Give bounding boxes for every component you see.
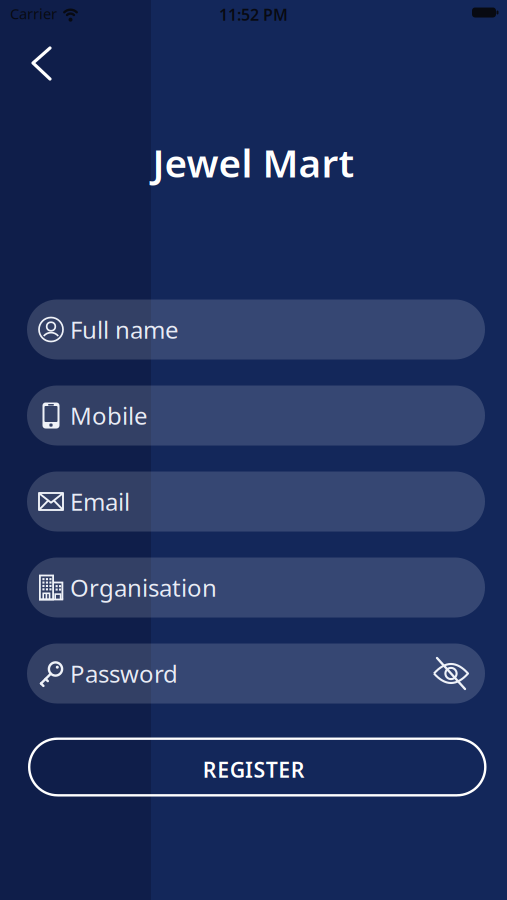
button[interactable]: Show password — [432, 656, 470, 690]
staticText: Organisation — [70, 572, 217, 603]
staticText: Password — [70, 658, 178, 689]
staticText: Carrier — [10, 4, 57, 23]
button[interactable]: Mobile — [0, 385, 507, 445]
staticText: Jewel Mart — [152, 137, 354, 188]
button[interactable]: REGISTER — [0, 737, 507, 796]
button[interactable]: Email — [0, 471, 507, 531]
staticText: Mobile — [70, 400, 148, 431]
button[interactable]: Organisation — [0, 557, 507, 617]
staticText: Full name — [70, 314, 179, 345]
button[interactable]: Full name — [0, 299, 507, 359]
staticText: REGISTER — [203, 755, 305, 784]
staticText: 11:52 PM — [219, 4, 288, 25]
staticText: Email — [70, 486, 130, 517]
button[interactable]: Back — [19, 41, 63, 85]
button[interactable]: Password — [0, 643, 507, 703]
